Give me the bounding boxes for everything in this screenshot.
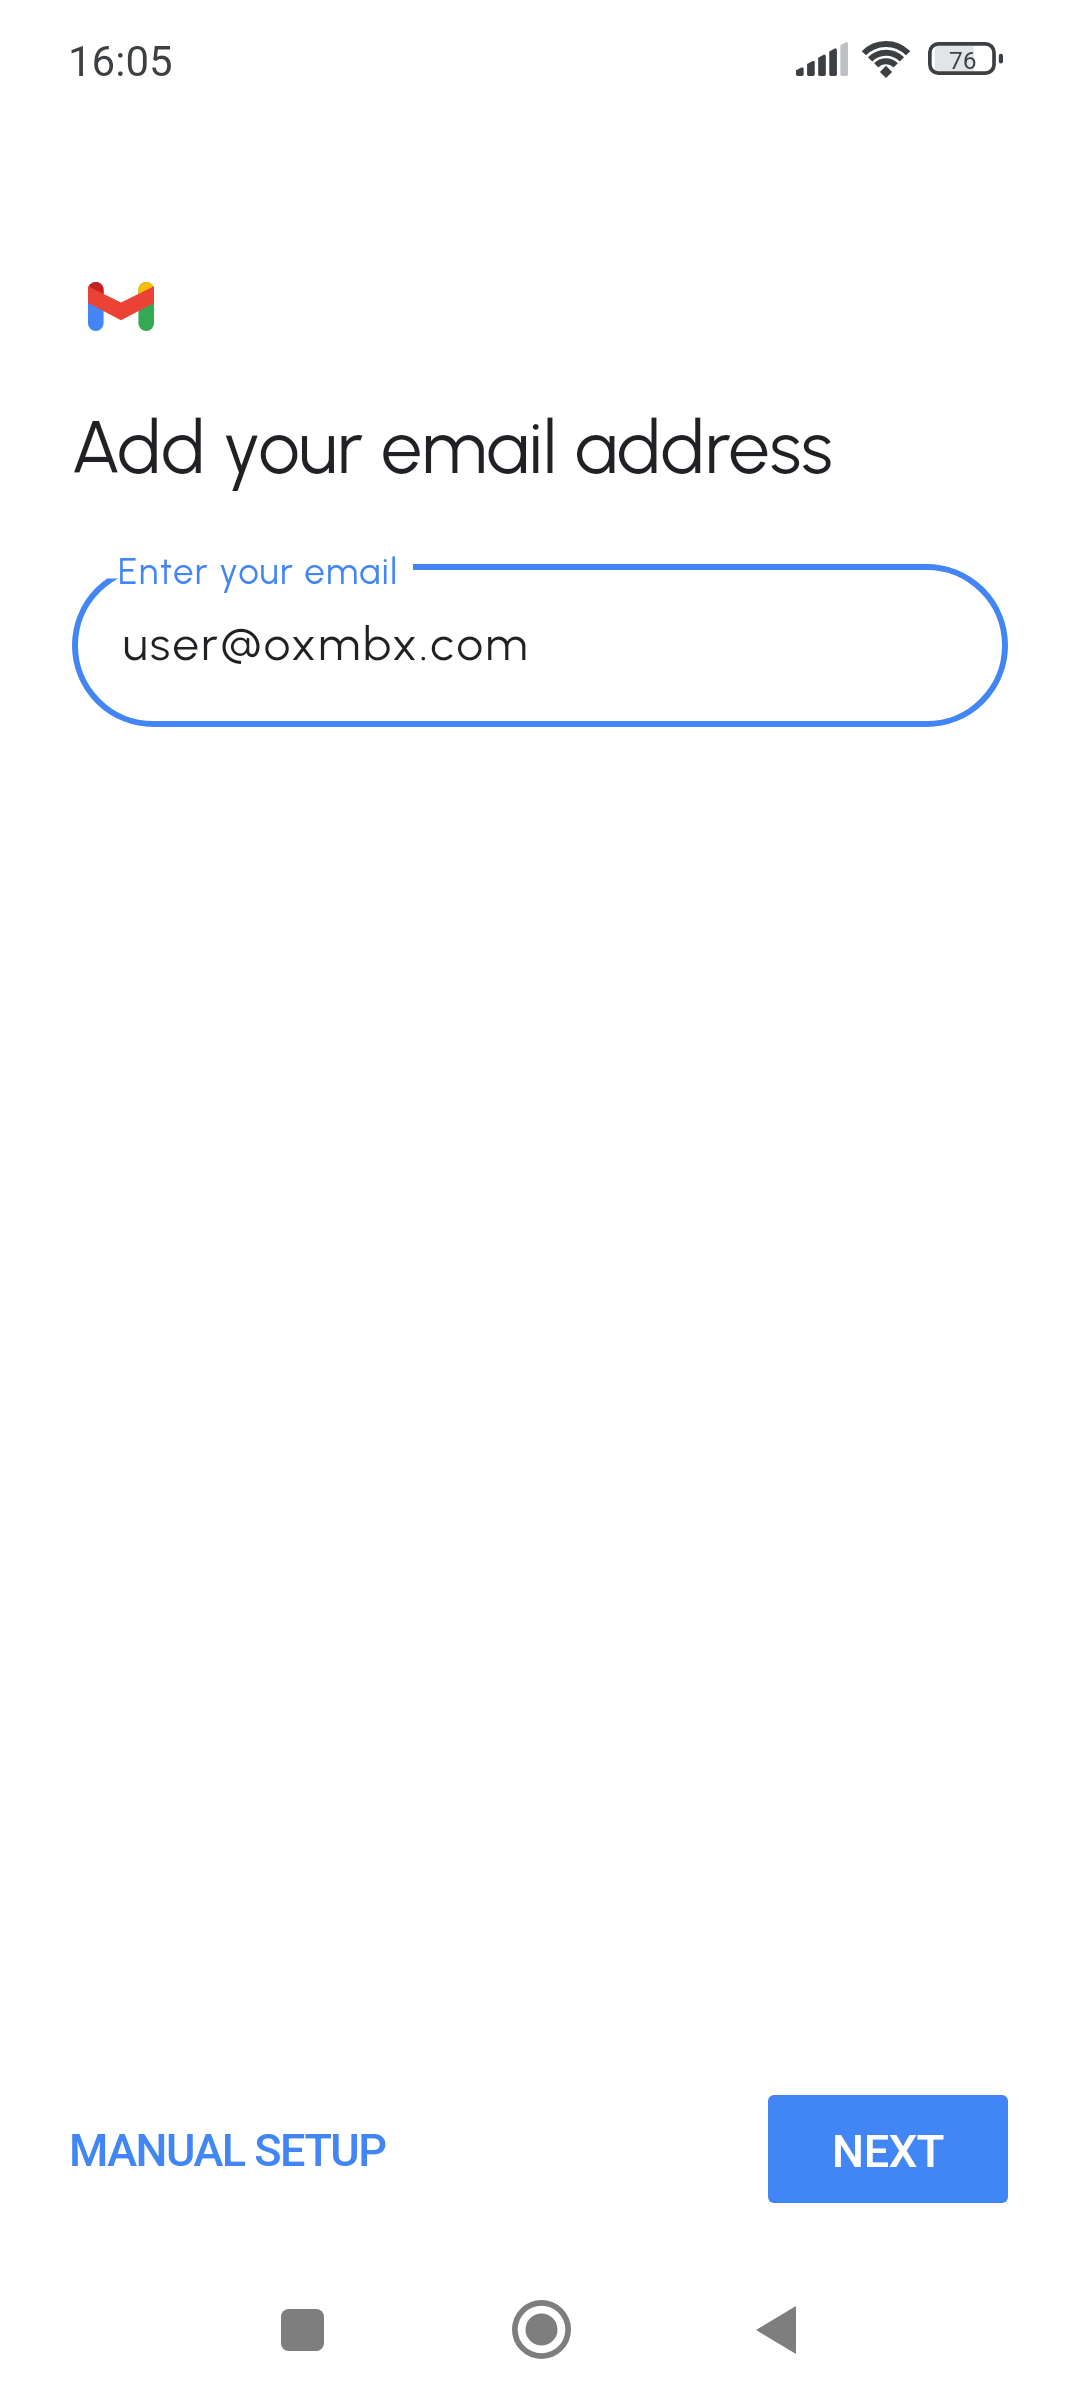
staticText: NEXT bbox=[832, 2125, 944, 2178]
button[interactable]: Back bbox=[704, 2259, 848, 2400]
staticText: 16:05 bbox=[68, 37, 173, 86]
staticText: 76 bbox=[949, 46, 977, 75]
button[interactable]: Home bbox=[469, 2259, 613, 2400]
button[interactable]: Enter your email bbox=[72, 564, 1008, 727]
button[interactable]: NEXT bbox=[768, 2095, 1008, 2203]
staticText: MANUAL SETUP bbox=[69, 2124, 386, 2177]
button[interactable]: MANUAL SETUP bbox=[45, 2096, 410, 2204]
staticText: Enter your email bbox=[118, 550, 399, 593]
button[interactable]: Recent apps bbox=[233, 2259, 371, 2400]
staticText: Add your email address bbox=[71, 403, 833, 491]
staticText: user@oxmbx.com bbox=[123, 615, 530, 672]
